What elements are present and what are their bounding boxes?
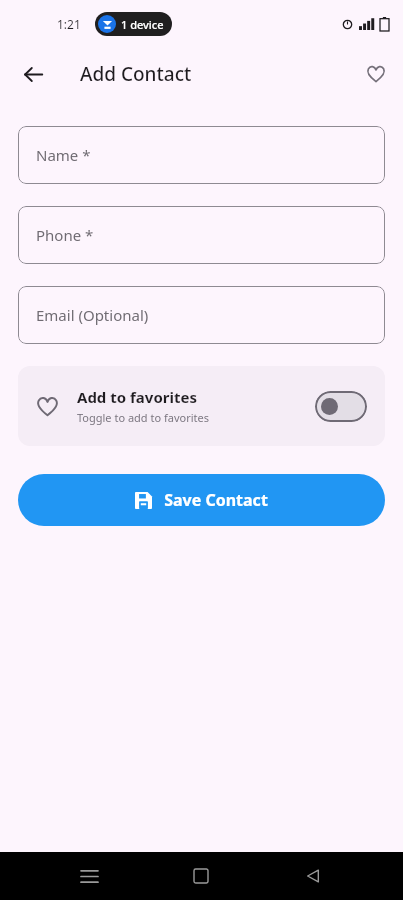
button[interactable]: Favorite xyxy=(356,54,396,94)
staticText: Add to favorites xyxy=(77,387,197,407)
button[interactable]: Back xyxy=(291,854,335,898)
button[interactable]: Add to favorites xyxy=(18,366,385,446)
staticText: Email (Optional) xyxy=(36,305,149,325)
staticText: Name * xyxy=(36,145,91,165)
button[interactable]: Add to favorites toggle xyxy=(315,391,367,422)
staticText: 1:21 xyxy=(57,16,81,32)
staticText: Add Contact xyxy=(80,61,192,87)
button[interactable]: Phone * xyxy=(18,206,385,264)
staticText: Toggle to add to favorites xyxy=(77,410,209,425)
button[interactable]: Email (Optional) xyxy=(18,286,385,344)
staticText: 1 device xyxy=(121,17,164,32)
button[interactable]: Recent apps xyxy=(67,854,111,898)
staticText: Phone * xyxy=(36,225,94,245)
staticText: Save Contact xyxy=(164,489,268,511)
button[interactable]: Save Contact xyxy=(18,474,385,526)
button[interactable]: Name * xyxy=(18,126,385,184)
button[interactable]: Home xyxy=(179,854,223,898)
button[interactable]: Back xyxy=(13,54,53,94)
